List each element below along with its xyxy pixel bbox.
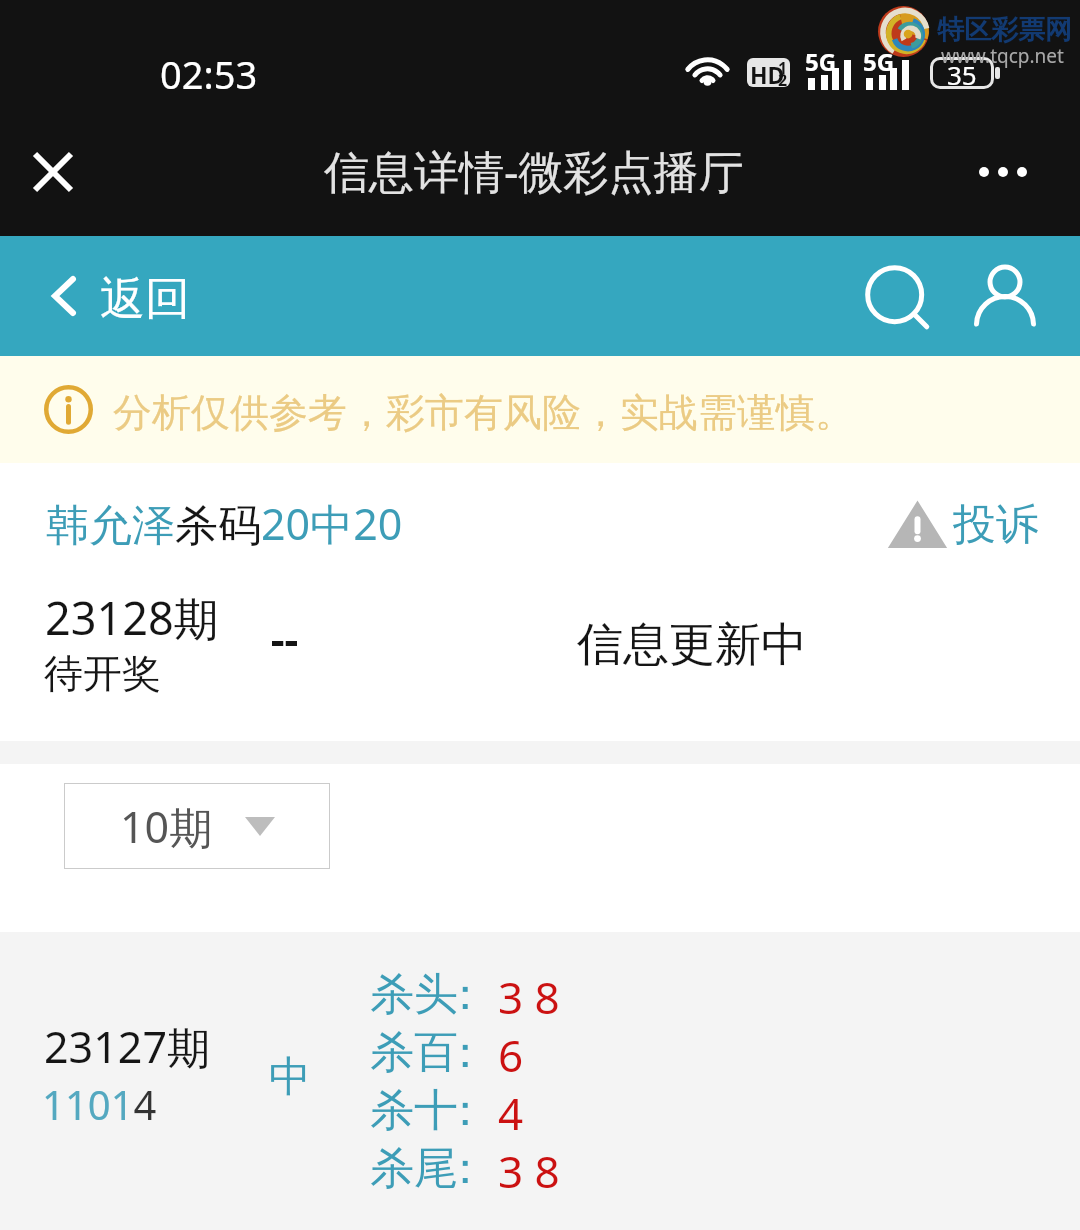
staticText: 23127期	[44, 1017, 210, 1076]
button[interactable]: Search	[851, 255, 947, 351]
staticText: 杀尾	[370, 1141, 458, 1196]
button[interactable]: Account	[957, 245, 1053, 341]
staticText: 韩允泽杀码20中20	[46, 494, 403, 553]
staticText: 1	[778, 58, 788, 79]
staticText: 6	[498, 1025, 524, 1085]
staticText: 待开奖	[44, 649, 161, 698]
staticText: 11014	[42, 1077, 157, 1131]
staticText: 分析仅供参考，彩市有风险，实战需谨慎。	[113, 388, 854, 437]
staticText: 特区彩票网	[937, 13, 1072, 47]
button[interactable]: Close	[13, 132, 93, 212]
staticText: ：	[443, 1141, 487, 1196]
staticText: 信息详情-微彩点播厅	[324, 140, 744, 201]
button[interactable]: 10期	[64, 783, 330, 869]
staticText: 投诉	[953, 498, 1039, 552]
staticText: 5G	[863, 45, 895, 78]
staticText: www.tqcp.net	[941, 43, 1064, 69]
staticText: ：	[443, 1083, 487, 1138]
staticText: 杀头	[370, 967, 458, 1022]
button[interactable]: 投诉	[890, 496, 1039, 554]
staticText: 信息更新中	[577, 616, 807, 674]
button[interactable]: More options	[965, 134, 1041, 210]
staticText: 4	[498, 1083, 524, 1143]
staticText: 35	[947, 57, 977, 89]
staticText: 5G	[805, 45, 837, 78]
staticText: 杀十	[370, 1083, 458, 1138]
staticText: 10期	[120, 797, 213, 856]
staticText: 23128期	[45, 587, 219, 648]
staticText: HD	[750, 59, 785, 87]
staticText: 02:53	[160, 48, 258, 100]
staticText: ：	[443, 1025, 487, 1080]
staticText: 2	[778, 69, 788, 87]
staticText: 3 8	[498, 967, 560, 1027]
staticText: 3 8	[498, 1141, 560, 1201]
staticText: ：	[443, 967, 487, 1022]
staticText: 返回	[100, 271, 190, 328]
button[interactable]: 返回	[52, 236, 232, 355]
staticText: 杀百	[370, 1025, 458, 1080]
staticText: 中	[269, 1051, 311, 1104]
button[interactable]: 23127期	[0, 932, 1080, 1230]
